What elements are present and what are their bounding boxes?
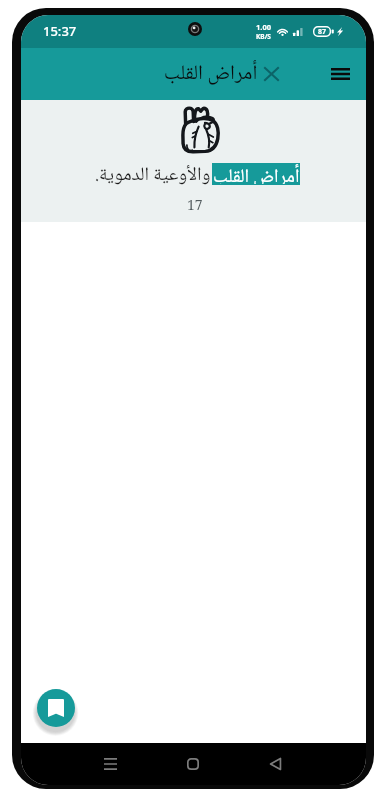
staticText: 87 xyxy=(318,27,327,37)
staticText: 15:37 xyxy=(43,22,77,40)
staticText: .والأوعية الدموية xyxy=(95,160,211,192)
button[interactable]: Recent apps xyxy=(92,746,128,782)
staticText: أمراض القلب xyxy=(164,57,258,92)
button[interactable]: Menu xyxy=(324,58,356,90)
button[interactable]: Home xyxy=(175,746,211,782)
button[interactable]: Bookmark xyxy=(37,689,75,727)
staticText: أمراض القلب xyxy=(213,162,300,184)
staticText: KB/S xyxy=(256,32,271,41)
button[interactable]: Back xyxy=(257,746,293,782)
staticText: 1.00 xyxy=(256,22,271,32)
staticText: 17 xyxy=(187,195,203,214)
button[interactable]: Close xyxy=(256,59,286,89)
